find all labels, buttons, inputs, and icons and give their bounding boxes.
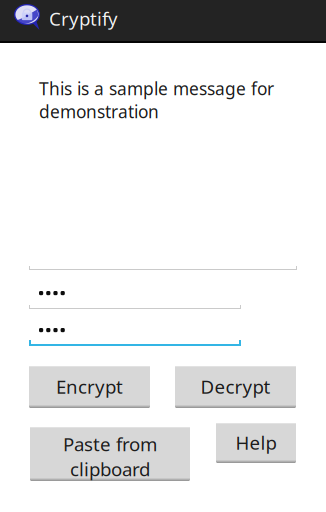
button[interactable]: Decrypt [175,366,296,408]
staticText: clipboard [70,457,150,481]
staticText: Help [235,430,276,455]
staticText: Decrypt [200,374,270,399]
button[interactable]: Help [216,423,296,463]
button[interactable]: Paste from [30,427,190,481]
staticText: Paste from [63,432,157,456]
staticText: Cryptify [49,6,118,31]
staticText: Encrypt [56,374,123,399]
staticText: This is a sample message for demonstrati… [39,77,274,123]
button[interactable]: Encrypt [29,366,150,408]
